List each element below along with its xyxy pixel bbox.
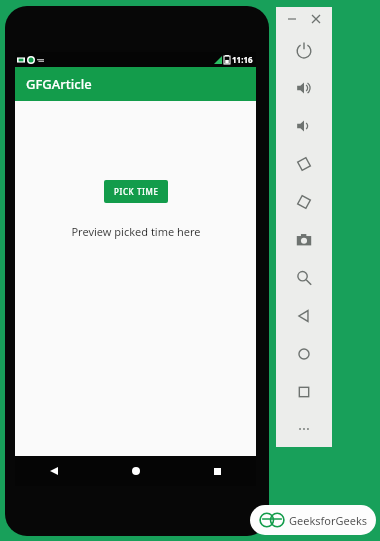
button[interactable]: Screenshot xyxy=(276,221,332,259)
button[interactable]: Rotate left xyxy=(276,145,332,183)
staticText: GeeksforGeeks xyxy=(289,513,368,528)
button[interactable]: Zoom xyxy=(276,259,332,297)
button[interactable]: Close xyxy=(308,11,324,27)
button[interactable]: PICK TIME xyxy=(104,180,168,203)
button[interactable]: Power xyxy=(276,31,332,69)
button[interactable]: Recent apps xyxy=(206,460,228,482)
staticText: PICK TIME xyxy=(114,186,159,197)
button[interactable]: Back xyxy=(43,460,65,482)
button[interactable]: Home xyxy=(276,335,332,373)
button[interactable]: Volume down xyxy=(276,107,332,145)
button[interactable]: Rotate right xyxy=(276,183,332,221)
button[interactable]: Home xyxy=(125,460,147,482)
staticText: 11:16 xyxy=(232,54,253,65)
button[interactable]: Volume up xyxy=(276,69,332,107)
button[interactable]: Recent apps xyxy=(276,373,332,411)
staticText: Preview picked time here xyxy=(71,224,201,239)
button[interactable]: Minimize xyxy=(284,11,300,27)
button[interactable]: More xyxy=(276,411,332,447)
button[interactable]: Back xyxy=(276,297,332,335)
staticText: GFGArticle xyxy=(26,75,92,93)
